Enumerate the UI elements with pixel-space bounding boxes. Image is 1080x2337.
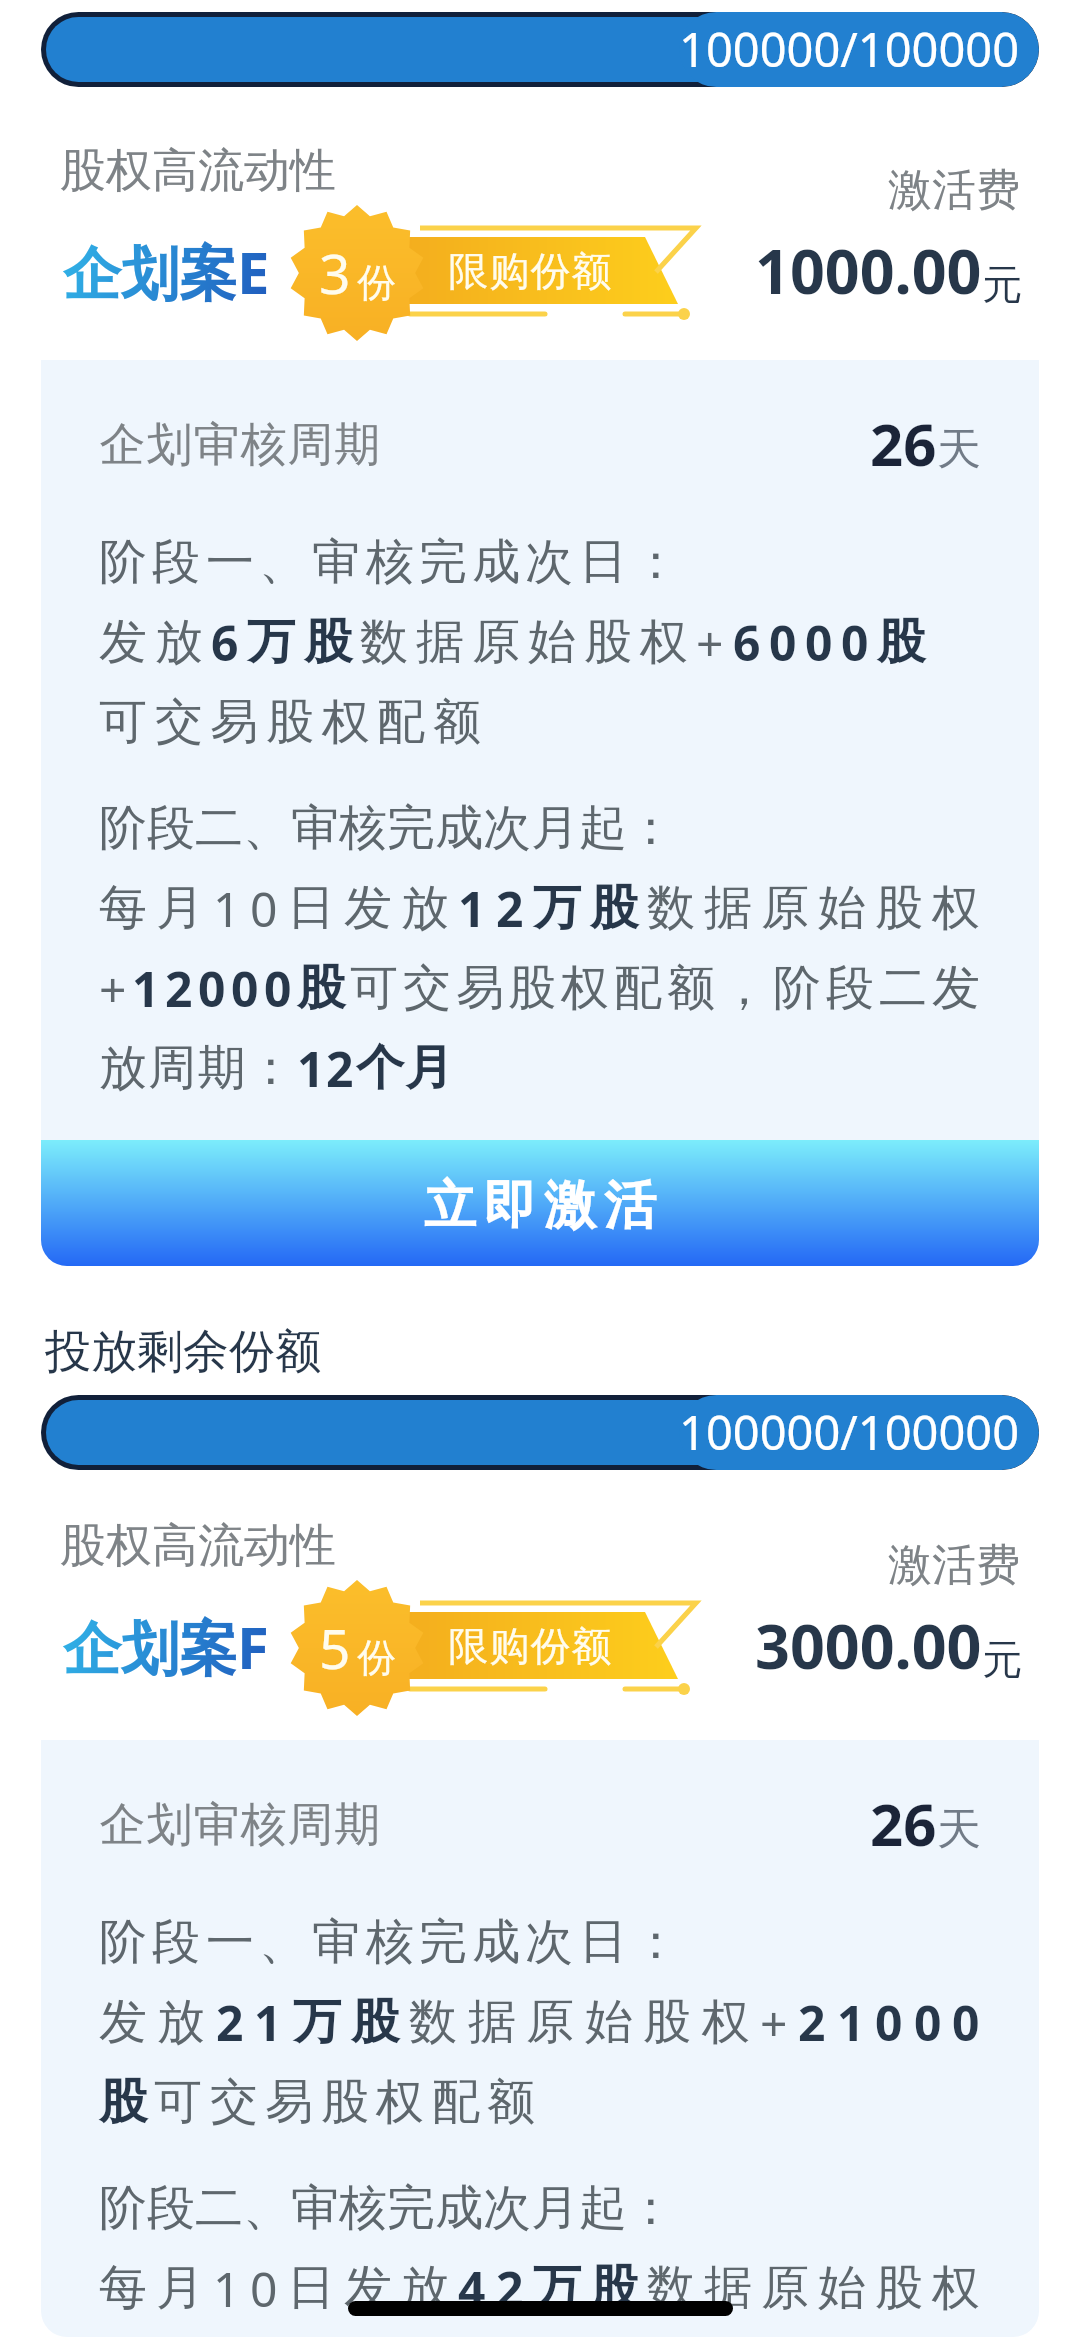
staticText: 100000/100000 bbox=[679, 1400, 1019, 1464]
staticText: 0 bbox=[231, 956, 259, 1021]
staticText: 0 bbox=[805, 610, 833, 675]
staticText: 据 bbox=[416, 612, 464, 672]
staticText: 可 bbox=[99, 692, 147, 752]
staticText: 核 bbox=[339, 2178, 387, 2238]
staticText: 可 bbox=[350, 958, 398, 1018]
staticText: 企划案F bbox=[63, 1607, 269, 1686]
staticText: 26 bbox=[870, 1784, 937, 1858]
staticText: 易 bbox=[210, 692, 258, 752]
staticText: 股 bbox=[508, 958, 556, 1018]
staticText: + bbox=[99, 956, 127, 1021]
button[interactable]: 企划案F bbox=[0, 1583, 1080, 1713]
staticText: 核 bbox=[366, 532, 414, 592]
staticText: 原 bbox=[761, 878, 809, 938]
staticText: 放 bbox=[157, 1992, 205, 2052]
staticText: 权 bbox=[322, 692, 370, 752]
staticText: 限购份额 bbox=[448, 246, 612, 296]
staticText: ： bbox=[632, 532, 680, 592]
staticText: 完 bbox=[387, 798, 435, 858]
staticText: 股 bbox=[297, 958, 345, 1018]
staticText: 企划审核周期 bbox=[99, 416, 381, 474]
staticText: 1 bbox=[254, 1990, 282, 2055]
staticText: 放 bbox=[401, 2258, 449, 2318]
staticText: 据 bbox=[468, 1992, 516, 2052]
staticText: 段 bbox=[147, 2178, 195, 2238]
staticText: 、 bbox=[259, 532, 307, 592]
staticText: 成 bbox=[435, 2178, 483, 2238]
staticText: 数 bbox=[647, 2258, 695, 2318]
staticText: 成 bbox=[472, 532, 520, 592]
staticText: 日 bbox=[287, 878, 335, 938]
staticText: 权 bbox=[561, 958, 609, 1018]
staticText: 配 bbox=[614, 958, 662, 1018]
button[interactable]: 剩余份额进度 bbox=[41, 1395, 1039, 1470]
staticText: 二 bbox=[195, 798, 243, 858]
staticText: 审 bbox=[291, 798, 339, 858]
staticText: 、 bbox=[243, 2178, 291, 2238]
staticText: 始 bbox=[585, 1992, 633, 2052]
staticText: 0 bbox=[264, 956, 292, 1021]
staticText: 2 bbox=[216, 1990, 244, 2055]
staticText: 股 bbox=[643, 1992, 691, 2052]
button[interactable]: 限购份额 5 份 bbox=[290, 1583, 710, 1713]
staticText: 日 bbox=[287, 2258, 335, 2318]
staticText: 阶 bbox=[773, 958, 821, 1018]
staticText: 据 bbox=[704, 878, 752, 938]
staticText: 审 bbox=[291, 2178, 339, 2238]
staticText: ： bbox=[632, 1912, 680, 1972]
staticText: 交 bbox=[210, 2072, 258, 2132]
staticText: 原 bbox=[526, 1992, 574, 2052]
button[interactable]: 立即激活 bbox=[41, 1140, 1039, 1266]
staticText: 配 bbox=[432, 2072, 480, 2132]
staticText: 股权高流动性 bbox=[60, 142, 336, 200]
staticText: 投放剩余份额 bbox=[45, 1323, 321, 1381]
button[interactable]: 企划案E bbox=[0, 208, 1080, 338]
staticText: 3 bbox=[319, 235, 351, 310]
staticText: 2 bbox=[326, 1036, 354, 1101]
staticText: 限购份额 bbox=[448, 1621, 612, 1671]
staticText: 、 bbox=[259, 1912, 307, 1972]
staticText: 易 bbox=[265, 2072, 313, 2132]
staticText: 放 bbox=[155, 612, 203, 672]
staticText: 每 bbox=[99, 2258, 147, 2318]
staticText: 1 bbox=[213, 2256, 241, 2321]
staticText: ， bbox=[720, 958, 768, 1018]
staticText: 、 bbox=[243, 798, 291, 858]
staticText: 日 bbox=[579, 1912, 627, 1972]
staticText: 发 bbox=[99, 1992, 147, 2052]
button[interactable]: 限购份额 3 份 bbox=[290, 208, 710, 338]
staticText: 企划审核周期 bbox=[99, 1796, 381, 1854]
staticText: 份 bbox=[357, 1633, 396, 1682]
staticText: 0 bbox=[841, 610, 869, 675]
staticText: 立即激活 bbox=[420, 1173, 660, 1239]
staticText: 额 bbox=[433, 692, 481, 752]
staticText: 额 bbox=[487, 2072, 535, 2132]
staticText: 个 bbox=[356, 1038, 404, 1098]
staticText: 股 bbox=[351, 1992, 399, 2052]
staticText: 据 bbox=[704, 2258, 752, 2318]
staticText: 易 bbox=[456, 958, 504, 1018]
staticText: 天 bbox=[937, 1802, 981, 1857]
staticText: 审 bbox=[312, 532, 360, 592]
staticText: 始 bbox=[818, 2258, 866, 2318]
staticText: 权 bbox=[932, 2258, 980, 2318]
staticText: 5 bbox=[319, 1610, 351, 1685]
staticText: 发 bbox=[344, 878, 392, 938]
button[interactable]: 剩余份额进度 bbox=[41, 12, 1039, 87]
staticText: 完 bbox=[387, 2178, 435, 2238]
staticText: + bbox=[760, 1990, 788, 2055]
staticText: 阶 bbox=[99, 532, 147, 592]
staticText: 周 bbox=[148, 1038, 196, 1098]
staticText: 份 bbox=[357, 258, 396, 307]
staticText: 原 bbox=[472, 612, 520, 672]
staticText: 万 bbox=[247, 612, 295, 672]
staticText: 1 bbox=[297, 1036, 325, 1101]
staticText: 元 bbox=[982, 259, 1022, 309]
staticText: 权 bbox=[702, 1992, 750, 2052]
staticText: 3000.00 bbox=[755, 1604, 982, 1687]
staticText: 期 bbox=[198, 1038, 246, 1098]
staticText: 段 bbox=[152, 1912, 200, 1972]
staticText: 成 bbox=[435, 798, 483, 858]
staticText: ： bbox=[247, 1038, 295, 1098]
